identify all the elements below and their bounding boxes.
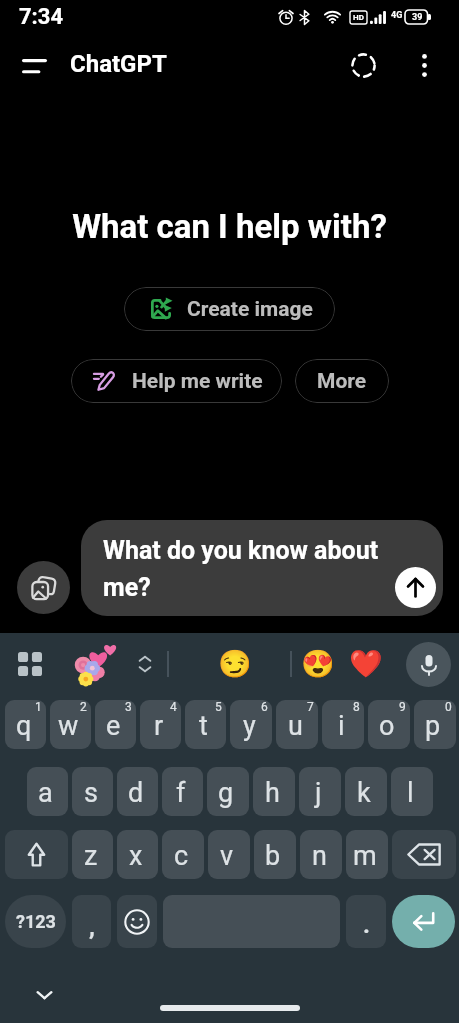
staticText: b bbox=[265, 840, 281, 872]
button[interactable]: d bbox=[117, 767, 158, 816]
button[interactable]: x bbox=[117, 830, 158, 879]
staticText: 6 bbox=[261, 700, 268, 714]
button[interactable]: Smirking face bbox=[208, 637, 262, 691]
staticText: What do you know about me? bbox=[103, 536, 385, 602]
staticText: 8 bbox=[353, 700, 360, 714]
staticText: What can I help with? bbox=[72, 207, 387, 246]
button[interactable]: c bbox=[162, 830, 204, 879]
staticText: 😍 bbox=[301, 648, 335, 680]
staticText: n bbox=[312, 840, 327, 872]
staticText: q bbox=[16, 710, 32, 742]
button[interactable]: v bbox=[208, 830, 250, 879]
staticText: 😏 bbox=[218, 648, 252, 680]
staticText: ❤️ bbox=[349, 648, 383, 680]
staticText: 9 bbox=[399, 700, 406, 714]
button[interactable]: Create image bbox=[124, 287, 335, 331]
button[interactable]: Shift bbox=[5, 830, 68, 879]
button[interactable]: Open menu bbox=[12, 44, 56, 88]
staticText: 7:34 bbox=[19, 4, 64, 30]
staticText: h bbox=[265, 777, 280, 809]
staticText: f bbox=[176, 777, 186, 809]
button[interactable]: h bbox=[253, 767, 295, 816]
staticText: t bbox=[199, 710, 208, 742]
button[interactable]: w bbox=[50, 700, 91, 749]
button[interactable]: Period bbox=[346, 895, 386, 948]
button[interactable]: Emoji bbox=[117, 895, 157, 948]
button[interactable]: z bbox=[72, 830, 113, 879]
staticText: y bbox=[243, 710, 256, 742]
staticText: d bbox=[128, 777, 144, 809]
button[interactable]: Help me write bbox=[71, 359, 282, 403]
staticText: 2 bbox=[80, 700, 87, 714]
staticText: s bbox=[84, 777, 98, 809]
staticText: 1 bbox=[35, 700, 42, 714]
button[interactable]: m bbox=[346, 830, 388, 879]
staticText: ChatGPT bbox=[70, 50, 167, 78]
staticText: i bbox=[338, 710, 345, 742]
button[interactable]: What do you know about me? bbox=[81, 520, 443, 616]
staticText: x bbox=[129, 840, 143, 872]
staticText: k bbox=[357, 777, 371, 809]
button[interactable]: g bbox=[207, 767, 249, 816]
button[interactable]: a bbox=[27, 767, 68, 816]
button[interactable]: More bbox=[295, 359, 389, 403]
staticText: j bbox=[315, 777, 322, 809]
staticText: w bbox=[58, 710, 79, 742]
staticText: u bbox=[288, 710, 303, 742]
button[interactable]: k bbox=[345, 767, 387, 816]
staticText: Create image bbox=[187, 297, 313, 322]
staticText: o bbox=[379, 710, 395, 742]
button[interactable]: b bbox=[254, 830, 296, 879]
button[interactable]: Attach photo bbox=[17, 561, 70, 614]
staticText: 4 bbox=[170, 700, 177, 714]
staticText: More bbox=[317, 369, 367, 394]
button[interactable]: j bbox=[299, 767, 341, 816]
button[interactable]: Enter bbox=[392, 895, 455, 948]
button[interactable]: ?123 bbox=[5, 895, 66, 948]
staticText: 39 bbox=[412, 12, 423, 23]
button[interactable]: Backspace bbox=[392, 830, 456, 879]
staticText: 7 bbox=[307, 700, 314, 714]
staticText: ?123 bbox=[16, 911, 56, 932]
button[interactable]: Expand suggestions bbox=[130, 649, 160, 679]
button[interactable]: l bbox=[391, 767, 433, 816]
staticText: a bbox=[38, 777, 53, 809]
button[interactable]: n bbox=[300, 830, 342, 879]
button[interactable]: More options bbox=[402, 43, 446, 87]
button[interactable]: q bbox=[5, 700, 46, 749]
button[interactable]: Hide keyboard bbox=[27, 978, 61, 1012]
staticText: HD bbox=[353, 13, 364, 22]
staticText: g bbox=[218, 777, 234, 809]
button[interactable]: p bbox=[414, 700, 456, 749]
staticText: 3 bbox=[125, 700, 132, 714]
button[interactable]: Red heart bbox=[339, 637, 393, 691]
staticText: e bbox=[106, 710, 121, 742]
staticText: 0 bbox=[445, 700, 452, 714]
button[interactable]: Temporary chat bbox=[340, 42, 386, 88]
button[interactable]: i bbox=[322, 700, 364, 749]
button[interactable]: e bbox=[95, 700, 136, 749]
staticText: . bbox=[363, 911, 370, 939]
staticText: l bbox=[407, 777, 414, 809]
button[interactable]: y bbox=[230, 700, 272, 749]
button[interactable]: Flowers and hearts sticker bbox=[68, 638, 122, 690]
button[interactable]: o bbox=[368, 700, 410, 749]
button[interactable]: Voice input bbox=[406, 642, 451, 687]
staticText: v bbox=[220, 840, 234, 872]
button[interactable]: Apps bbox=[9, 643, 51, 685]
staticText: z bbox=[84, 840, 98, 872]
staticText: p bbox=[425, 710, 441, 742]
button[interactable]: f bbox=[162, 767, 203, 816]
button[interactable]: u bbox=[276, 700, 318, 749]
button[interactable]: Smiling face with hearts bbox=[291, 637, 345, 691]
button[interactable]: r bbox=[140, 700, 181, 749]
staticText: 5 bbox=[215, 700, 222, 714]
button[interactable]: Send bbox=[395, 567, 436, 608]
staticText: c bbox=[174, 840, 189, 872]
staticText: Help me write bbox=[132, 369, 263, 394]
button[interactable]: s bbox=[72, 767, 113, 816]
staticText: r bbox=[154, 710, 164, 742]
button[interactable]: t bbox=[185, 700, 226, 749]
button[interactable]: Comma bbox=[72, 895, 111, 948]
